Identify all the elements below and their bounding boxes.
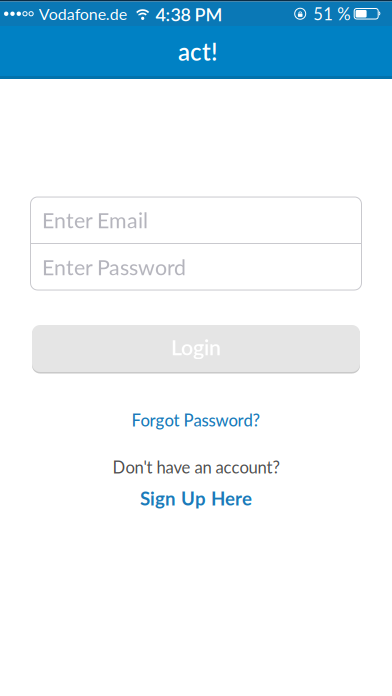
staticText: Enter Password [42, 254, 186, 280]
staticText: 51 % [313, 4, 350, 24]
staticText: Forgot Password? [131, 410, 260, 430]
staticText: Enter Email [42, 207, 148, 233]
button[interactable]: Login [32, 325, 360, 372]
staticText: Vodafone.de [39, 4, 127, 23]
staticText: Sign Up Here [140, 487, 252, 509]
staticText: Don't have an account? [112, 457, 279, 477]
staticText: 4:38 PM [155, 3, 222, 25]
button[interactable]: Enter Password [30, 244, 361, 290]
button[interactable]: Forgot Password? [131, 410, 260, 430]
button[interactable]: Sign Up Here [140, 487, 252, 509]
staticText: Login [171, 334, 221, 360]
staticText: act! [178, 37, 218, 66]
button[interactable]: Enter Email [30, 197, 361, 243]
